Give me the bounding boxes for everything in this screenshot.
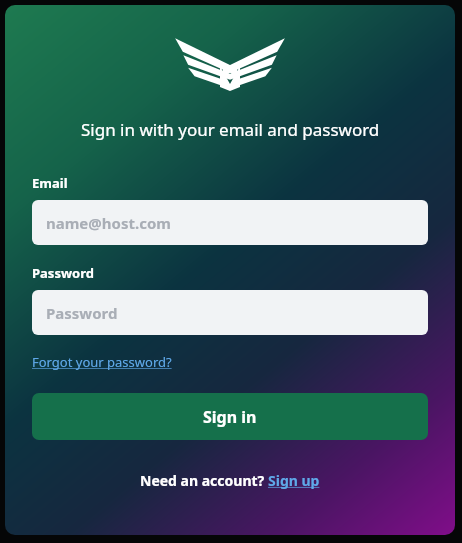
staticText: name@host.com [46, 213, 171, 233]
button[interactable]: Sign up [268, 471, 320, 490]
staticText: Need an account? [140, 471, 268, 490]
button[interactable]: Forgot your password? [32, 353, 172, 371]
button[interactable]: name@host.com [32, 200, 428, 245]
button[interactable]: Password [32, 290, 428, 335]
other: Logo [171, 35, 289, 91]
staticText: Password [32, 264, 94, 282]
staticText: Password [46, 303, 118, 323]
staticText: Email [32, 174, 68, 192]
staticText: Sign in [203, 406, 257, 428]
staticText: Forgot your password? [32, 353, 172, 371]
staticText: Sign up [268, 471, 320, 490]
staticText: Sign in with your email and password [81, 118, 380, 141]
button[interactable]: Sign in [32, 393, 428, 440]
